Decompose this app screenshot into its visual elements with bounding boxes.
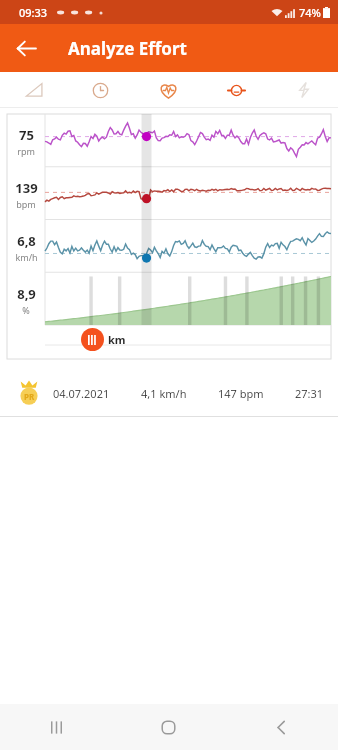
button[interactable]: Cadence — [202, 72, 270, 108]
staticText: bpm — [16, 198, 36, 210]
button[interactable]: PR — [0, 370, 338, 416]
button[interactable]: Time — [67, 72, 134, 108]
staticText: 8,9 — [17, 285, 36, 303]
staticText: km/h — [15, 251, 38, 263]
button[interactable]: Heart rate — [134, 72, 202, 108]
button[interactable]: Back — [225, 704, 338, 750]
staticText: 6,8 — [17, 232, 36, 250]
button[interactable]: Back — [6, 28, 46, 68]
button[interactable]: Home — [112, 704, 225, 750]
staticText: 09:33 — [19, 5, 48, 20]
staticText: 04.07.2021 — [53, 386, 110, 401]
staticText: 139 — [15, 179, 38, 197]
button[interactable]: 75 — [7, 114, 331, 359]
staticText: 4,1 km/h — [141, 386, 187, 401]
staticText: rpm — [17, 145, 35, 157]
staticText: km — [108, 332, 126, 347]
staticText: PR — [24, 391, 35, 402]
button[interactable]: Slope — [0, 72, 67, 108]
staticText: 75 — [19, 126, 34, 144]
staticText: % — [22, 304, 30, 316]
button[interactable]: Scrub position — [81, 328, 104, 351]
button[interactable]: Recents — [0, 704, 112, 750]
staticText: 74% — [299, 5, 321, 20]
button[interactable]: Power — [270, 72, 338, 108]
staticText: Analyze Effort — [68, 37, 187, 60]
staticText: 27:31 — [295, 386, 324, 401]
staticText: 147 bpm — [218, 386, 264, 401]
